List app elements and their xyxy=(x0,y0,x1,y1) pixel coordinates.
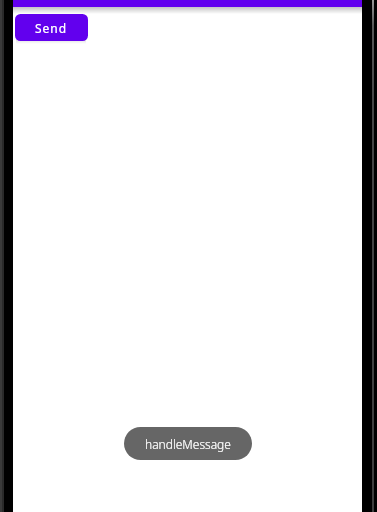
staticText: Send xyxy=(35,20,68,36)
button[interactable]: Send xyxy=(15,14,88,41)
staticText: handleMessage xyxy=(145,436,231,452)
button[interactable]: handleMessage xyxy=(124,427,252,460)
